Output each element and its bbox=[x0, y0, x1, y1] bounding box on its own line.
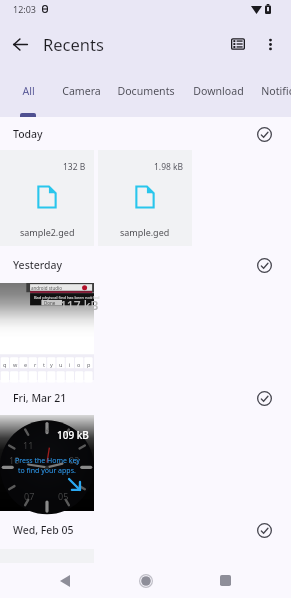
staticText: Fri, Mar 21 bbox=[13, 391, 67, 405]
button[interactable]: 132 B bbox=[0, 150, 94, 246]
staticText: 117 kB bbox=[60, 297, 99, 313]
button[interactable]: Download bbox=[186, 70, 250, 117]
button[interactable]: Switch to list view bbox=[218, 24, 258, 64]
staticText: 12:03 bbox=[13, 3, 37, 15]
staticText: 132 B bbox=[63, 161, 86, 173]
staticText: Press the Home key bbox=[15, 456, 80, 466]
staticText: i bbox=[69, 361, 71, 368]
button[interactable]: Documents bbox=[110, 70, 181, 117]
staticText: All bbox=[22, 84, 35, 98]
button[interactable]: android studio bbox=[0, 283, 94, 380]
staticText: y bbox=[50, 361, 53, 368]
staticText: Bad phyiscal find has been notified bbox=[34, 295, 100, 300]
staticText: Wed, Feb 05 bbox=[13, 523, 74, 537]
staticText: Done bbox=[44, 300, 56, 306]
staticText: to find your apps. bbox=[18, 466, 76, 476]
staticText: Yesterday bbox=[13, 258, 63, 272]
staticText: 10 bbox=[9, 454, 20, 466]
button[interactable]: All bbox=[15, 70, 41, 117]
staticText: android studio bbox=[31, 285, 62, 291]
button[interactable]: Camera bbox=[54, 70, 109, 117]
button[interactable]: Select all bbox=[253, 254, 275, 276]
staticText: 1.98 kB bbox=[154, 161, 184, 173]
staticText: t bbox=[43, 361, 45, 368]
button[interactable]: More options bbox=[250, 24, 290, 64]
staticText: Today bbox=[13, 127, 43, 141]
button[interactable]: 11 bbox=[0, 415, 94, 511]
staticText: 02 bbox=[69, 454, 80, 466]
staticText: Download bbox=[193, 84, 244, 98]
staticText: p bbox=[87, 361, 91, 368]
staticText: 07 bbox=[24, 490, 35, 502]
staticText: Camera bbox=[62, 84, 101, 98]
button[interactable]: Notific bbox=[254, 70, 291, 117]
staticText: q bbox=[3, 361, 7, 368]
button[interactable]: 1.98 kB bbox=[98, 150, 192, 246]
staticText: e bbox=[24, 361, 28, 368]
staticText: Notific bbox=[261, 84, 291, 98]
staticText: 109 kB bbox=[57, 428, 89, 442]
button[interactable]: Home bbox=[126, 563, 166, 598]
staticText: u bbox=[59, 361, 63, 368]
button[interactable]: Recent apps bbox=[205, 563, 245, 598]
staticText: Documents bbox=[117, 84, 175, 98]
button[interactable]: Back bbox=[45, 563, 85, 598]
button[interactable]: Select all bbox=[253, 387, 275, 409]
button[interactable]: Select all bbox=[253, 519, 275, 541]
staticText: w bbox=[13, 361, 18, 368]
staticText: 05 bbox=[58, 490, 69, 502]
staticText: o bbox=[77, 361, 81, 368]
staticText: sample2.ged bbox=[20, 226, 75, 238]
button[interactable]: Select all bbox=[253, 123, 275, 145]
button[interactable]: Back bbox=[0, 18, 40, 70]
staticText: sample.ged bbox=[120, 226, 170, 238]
staticText: r bbox=[34, 361, 37, 368]
staticText: 11 bbox=[23, 439, 34, 451]
staticText: Recents bbox=[43, 33, 104, 55]
